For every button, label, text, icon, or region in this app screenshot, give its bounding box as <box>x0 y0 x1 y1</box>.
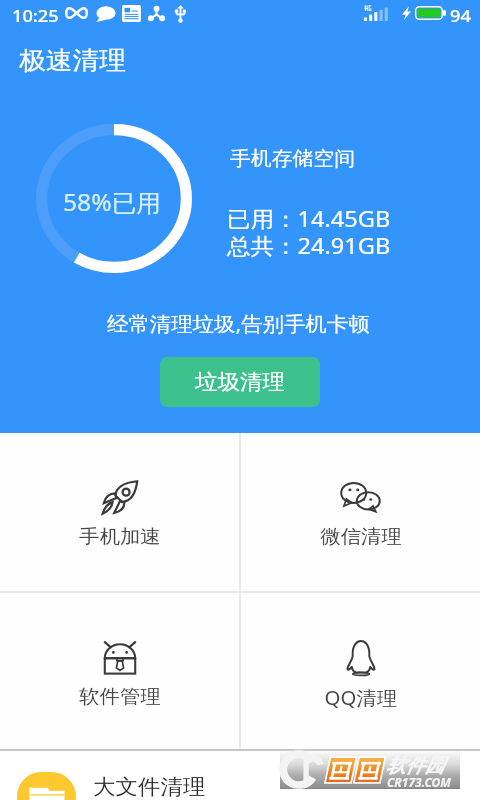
button[interactable]: 微信清理 <box>241 433 480 591</box>
staticText: CR173.COM <box>387 774 451 790</box>
staticText: 总共：24.91GB <box>227 230 391 260</box>
staticText: 大文件清理 <box>93 774 205 800</box>
staticText: 已用：14.45GB <box>227 203 391 233</box>
staticText: 58%已用 <box>63 186 161 217</box>
button[interactable]: 软件管理 <box>0 593 239 749</box>
button[interactable]: 大文件清理 <box>0 751 480 800</box>
staticText: 垃圾清理 <box>195 369 285 395</box>
staticText: 手机存储空间 <box>230 146 355 171</box>
staticText: 极速清理 <box>19 45 126 76</box>
staticText: 94 <box>450 4 471 27</box>
staticText: 经常清理垃圾,告别手机卡顿 <box>107 310 370 337</box>
staticText: 软件园 <box>386 754 444 778</box>
staticText: QQ清理 <box>325 685 397 711</box>
staticText: 软件管理 <box>79 685 161 709</box>
staticText: 微信清理 <box>320 525 402 549</box>
staticText: 手机加速 <box>79 525 161 549</box>
button[interactable]: 垃圾清理 <box>160 357 320 407</box>
button[interactable]: QQ清理 <box>241 593 480 749</box>
button[interactable]: 手机加速 <box>0 433 239 591</box>
staticText: 10:25 <box>12 4 59 27</box>
